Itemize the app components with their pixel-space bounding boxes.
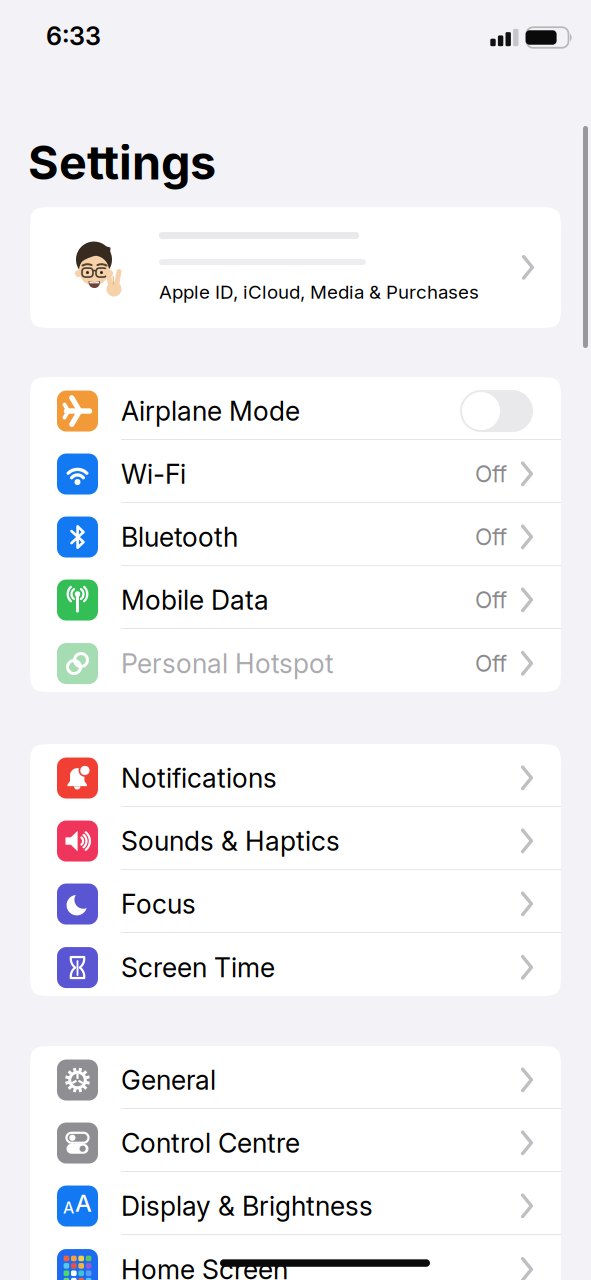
button[interactable]: Apple ID, iCloud, Media & Purchases (30, 207, 561, 328)
staticText: Screen Time (121, 952, 275, 983)
staticText: A (75, 1189, 92, 1217)
button[interactable]: General (30, 1046, 561, 1108)
button[interactable]: Focus (30, 870, 561, 932)
staticText: Focus (121, 888, 196, 920)
button[interactable]: Airplane Mode (30, 377, 561, 439)
button[interactable]: Wi-Fi (30, 440, 561, 502)
staticText: Settings (28, 135, 216, 190)
button[interactable]: Notifications (30, 744, 561, 806)
staticText: A (63, 1198, 74, 1217)
staticText: Display & Brightness (121, 1190, 373, 1222)
staticText: Apple ID, iCloud, Media & Purchases (159, 281, 479, 303)
staticText: Airplane Mode (121, 395, 300, 427)
button[interactable]: Personal Hotspot (30, 629, 561, 692)
staticText: Notifications (121, 762, 277, 794)
button[interactable]: Mobile Data (30, 566, 561, 628)
staticText: Off (475, 587, 507, 613)
staticText: Bluetooth (121, 521, 238, 553)
staticText: Wi-Fi (121, 458, 186, 490)
staticText: Off (475, 650, 507, 677)
staticText: Off (475, 524, 507, 550)
staticText: General (121, 1064, 216, 1096)
staticText: Home Screen (121, 1254, 288, 1280)
button[interactable]: Sounds & Haptics (30, 807, 561, 869)
button[interactable]: Screen Time (30, 933, 561, 996)
staticText: Mobile Data (121, 584, 269, 616)
button[interactable]: Home Screen (30, 1235, 561, 1280)
staticText: 6:33 (46, 21, 101, 51)
button[interactable]: A (30, 1172, 561, 1234)
staticText: Control Centre (121, 1127, 300, 1159)
staticText: Personal Hotspot (121, 648, 334, 679)
button[interactable]: Bluetooth (30, 503, 561, 565)
staticText: Off (475, 461, 507, 487)
button[interactable]: Control Centre (30, 1109, 561, 1171)
staticText: Sounds & Haptics (121, 825, 340, 857)
